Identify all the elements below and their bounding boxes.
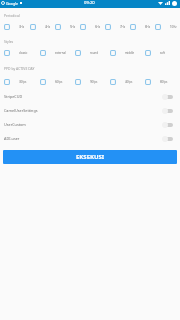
staticText: 09:20 [84, 0, 95, 6]
button[interactable]: 5Hz [55, 24, 80, 30]
button[interactable]: 7Hz [105, 24, 130, 30]
button[interactable]: ADI-user [4, 133, 173, 144]
staticText: Styles [4, 39, 14, 44]
button[interactable]: 80fps [145, 79, 180, 85]
button[interactable]: 40fps [110, 79, 145, 85]
button[interactable]: UserCustom [4, 119, 173, 130]
button[interactable]: 6Hz [80, 24, 105, 30]
button[interactable]: 10Hz [155, 24, 180, 30]
button[interactable]: 8Hz [130, 24, 155, 30]
staticText: 6Hz [95, 25, 100, 29]
staticText: 60fps [55, 80, 63, 84]
staticText: PPD by ACTIVE DAY [4, 66, 35, 71]
staticText: StripeCUD [4, 94, 23, 99]
staticText: classic [19, 51, 28, 55]
staticText: 30fps [19, 80, 27, 84]
staticText: 4Hz [45, 25, 50, 29]
staticText: 8Hz [145, 25, 150, 29]
button[interactable]: 3Hz [4, 24, 30, 30]
staticText: 5Hz [70, 25, 75, 29]
staticText: round [90, 51, 98, 55]
button[interactable]: 30fps [4, 79, 40, 85]
staticText: UserCustom [4, 122, 26, 127]
button[interactable]: external [40, 50, 75, 56]
button[interactable]: classic [4, 50, 40, 56]
button[interactable]: 90fps [75, 79, 110, 85]
button[interactable]: 4Hz [30, 24, 55, 30]
staticText: 10Hz [170, 25, 177, 29]
button[interactable]: EKSEKUSI [3, 150, 177, 164]
staticText: 90fps [90, 80, 98, 84]
button[interactable]: StripeCUD [4, 91, 173, 102]
staticText: external [55, 51, 66, 55]
staticText: Google [6, 1, 19, 6]
staticText: soft [160, 51, 166, 55]
button[interactable]: CamelUserSettings [4, 105, 173, 116]
button[interactable]: 60fps [40, 79, 75, 85]
button[interactable]: soft [145, 50, 180, 56]
staticText: ADI-user [4, 136, 20, 141]
staticText: 3Hz [19, 25, 24, 29]
staticText: 7Hz [120, 25, 125, 29]
button[interactable]: middle [110, 50, 145, 56]
staticText: EKSEKUSI [76, 153, 105, 161]
staticText: Periodical [4, 13, 20, 18]
staticText: 40fps [125, 80, 133, 84]
staticText: CamelUserSettings [4, 108, 38, 113]
button[interactable]: round [75, 50, 110, 56]
staticText: middle [125, 51, 135, 55]
staticText: 80fps [160, 80, 168, 84]
